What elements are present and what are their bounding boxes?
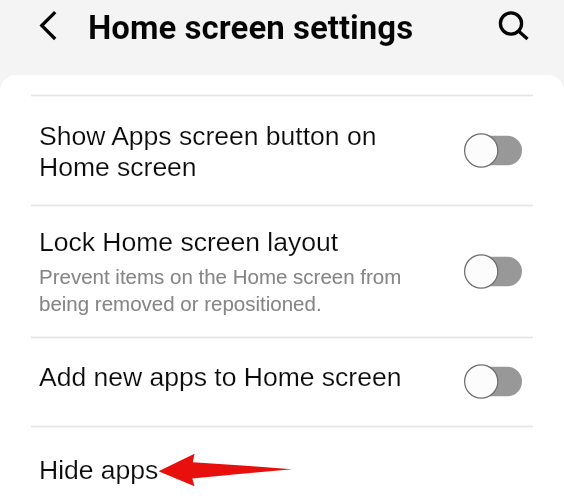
staticText: Lock Home screen layout — [39, 227, 339, 257]
staticText: Show Apps screen button on Home screen — [39, 121, 377, 181]
button[interactable]: Toggle setting — [464, 365, 522, 399]
button[interactable]: Lock Home screen layout — [0, 206, 564, 337]
button[interactable]: Search — [491, 3, 531, 43]
staticText: Prevent items on the Home screen from be… — [39, 265, 402, 315]
button[interactable]: Hide apps — [0, 427, 564, 500]
staticText: Add new apps to Home screen — [39, 362, 402, 392]
staticText: Hide apps — [39, 455, 159, 485]
button[interactable]: Navigate up — [28, 6, 66, 44]
button[interactable]: Add new apps to Home screen — [0, 338, 564, 426]
button[interactable]: Show Apps screen button on Home screen — [0, 96, 564, 205]
button[interactable]: Toggle setting — [464, 255, 522, 289]
staticText: Home screen settings — [88, 8, 414, 47]
button[interactable]: Toggle setting — [464, 134, 522, 168]
